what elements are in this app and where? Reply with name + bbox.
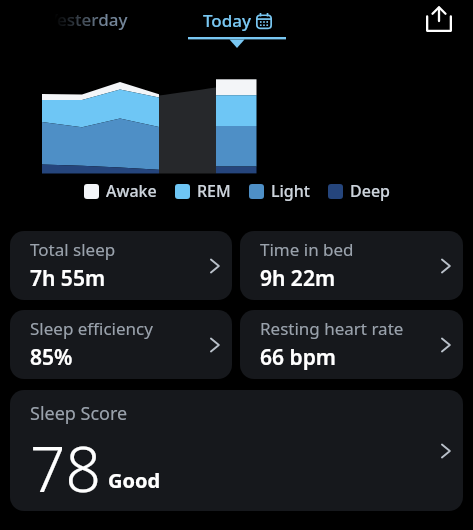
- staticText: Deep: [350, 180, 390, 202]
- button[interactable]: Sleep efficiency: [10, 310, 232, 379]
- staticText: Total sleep: [30, 238, 116, 261]
- staticText: Time in bed: [260, 238, 354, 261]
- staticText: 85%: [30, 343, 73, 372]
- staticText: Today: [203, 9, 251, 32]
- staticText: Light: [271, 180, 310, 202]
- staticText: Awake: [106, 180, 157, 202]
- staticText: Sleep efficiency: [30, 317, 153, 340]
- staticText: 9h 22m: [260, 264, 336, 293]
- staticText: REM: [197, 180, 231, 202]
- button[interactable]: Resting heart rate: [240, 310, 463, 379]
- staticText: Resting heart rate: [260, 317, 404, 340]
- button[interactable]: Time in bed: [240, 231, 463, 300]
- staticText: 66 bpm: [260, 343, 336, 372]
- staticText: 78: [30, 426, 101, 510]
- button[interactable]: Today: [188, 0, 286, 46]
- staticText: 7h 55m: [30, 264, 106, 293]
- button[interactable]: Total sleep: [10, 231, 232, 300]
- button[interactable]: Share: [423, 3, 455, 35]
- staticText: Good: [108, 467, 161, 494]
- staticText: Yesterday: [48, 8, 128, 31]
- button[interactable]: Sleep Score: [10, 390, 463, 511]
- button[interactable]: Yesterday: [48, 5, 138, 33]
- staticText: Sleep Score: [30, 401, 128, 426]
